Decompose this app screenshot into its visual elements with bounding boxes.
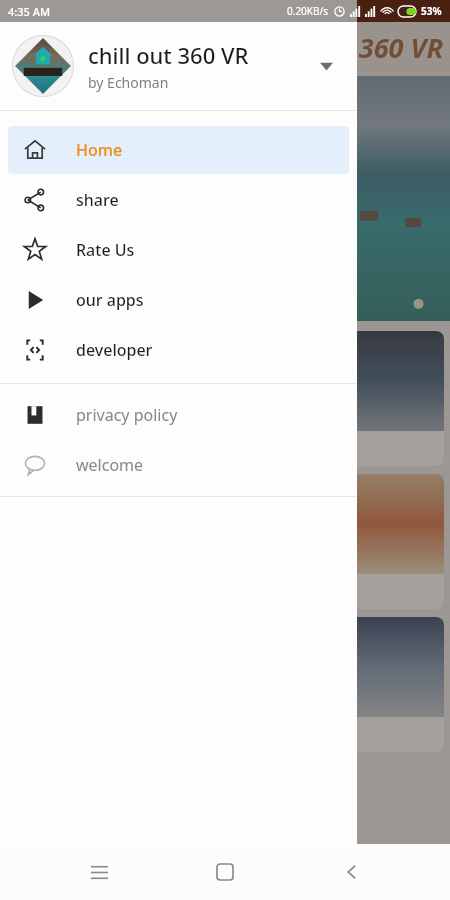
button[interactable]: welcome <box>8 441 349 489</box>
button[interactable]: privacy policy <box>8 391 349 439</box>
staticText: 4:35 AM <box>8 4 51 19</box>
staticText: by Echoman <box>88 73 169 92</box>
button[interactable]: Expand account list <box>309 49 343 83</box>
staticText: chill out 360 VR <box>248 29 444 66</box>
staticText: share <box>76 189 119 211</box>
staticText: our apps <box>76 289 144 311</box>
staticText: 53% <box>421 4 442 18</box>
button[interactable]: Home <box>8 126 349 174</box>
staticText: chill out 360 VR <box>88 40 249 70</box>
staticText: welcome <box>76 454 144 476</box>
staticText: Home <box>76 139 123 161</box>
staticText: developer <box>76 339 153 361</box>
button[interactable]: Rate Us <box>8 226 349 274</box>
staticText: 0.20KB/s <box>287 4 329 18</box>
button[interactable]: share <box>8 176 349 224</box>
staticText: privacy policy <box>76 404 178 426</box>
button[interactable]: Recent apps <box>71 844 127 900</box>
button[interactable]: Home <box>197 844 253 900</box>
button[interactable]: developer <box>8 326 349 374</box>
staticText: Rate Us <box>76 239 135 261</box>
button[interactable]: our apps <box>8 276 349 324</box>
button[interactable]: Back <box>324 844 380 900</box>
